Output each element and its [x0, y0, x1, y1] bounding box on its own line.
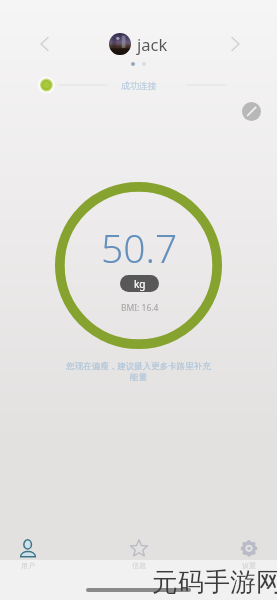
button[interactable]: kg: [120, 275, 159, 292]
button[interactable]: Next user: [223, 32, 247, 56]
staticText: 设置: [242, 561, 256, 570]
button[interactable]: Previous user: [32, 32, 56, 56]
button[interactable]: 设置: [220, 536, 277, 573]
staticText: 用户: [21, 561, 35, 570]
staticText: 成功连接: [121, 80, 157, 91]
staticText: jack: [137, 33, 168, 55]
staticText: BMI: 16.4: [121, 302, 159, 314]
staticText: 元码手游网: [152, 566, 277, 599]
button[interactable]: 信息: [110, 536, 168, 573]
staticText: 您现在偏瘦，建议摄入更多卡路里补充能量: [63, 361, 214, 383]
staticText: 50.7: [101, 221, 178, 274]
button[interactable]: Edit: [242, 102, 261, 121]
staticText: 信息: [132, 561, 146, 570]
button[interactable]: jack: [109, 33, 168, 55]
staticText: kg: [134, 277, 146, 291]
button[interactable]: 用户: [0, 536, 57, 573]
